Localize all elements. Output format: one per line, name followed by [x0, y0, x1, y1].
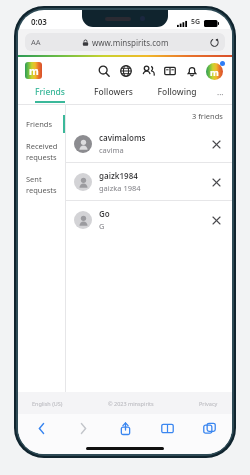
button[interactable]: Notifications — [184, 63, 199, 78]
staticText: Go — [99, 208, 110, 219]
button[interactable]: Friends — [140, 63, 155, 78]
button[interactable]: Go — [74, 201, 224, 238]
button[interactable]: Followers — [82, 84, 145, 104]
staticText: m — [210, 66, 219, 78]
button[interactable]: AA — [25, 33, 225, 51]
staticText: © 2023 minspirits — [108, 400, 154, 407]
staticText: gaizka 1984 — [99, 183, 141, 193]
button[interactable]: Library — [162, 63, 177, 78]
staticText: Privacy — [199, 400, 218, 407]
staticText: Following — [157, 86, 197, 98]
staticText: Friends — [35, 86, 65, 98]
button[interactable]: Forward — [72, 417, 94, 439]
staticText: gaizk1984 — [99, 170, 138, 181]
button[interactable]: Explore — [118, 63, 133, 78]
staticText: English (US) — [32, 400, 63, 407]
staticText: 3 friends — [192, 111, 223, 121]
button[interactable]: Bookmarks — [156, 417, 178, 439]
button[interactable]: Home — [25, 62, 42, 79]
button[interactable]: Friends — [18, 113, 65, 135]
staticText: 5G — [191, 17, 201, 27]
staticText: m — [29, 64, 39, 78]
staticText: Followers — [94, 86, 133, 98]
button[interactable]: Following — [145, 84, 208, 104]
button[interactable]: Reload — [210, 38, 219, 47]
staticText: G — [99, 221, 105, 231]
button[interactable]: Remove gaizk1984 — [208, 174, 224, 190]
button[interactable]: Received requests — [18, 135, 65, 168]
staticText: Sent requests — [26, 174, 57, 195]
button[interactable]: More — [208, 84, 232, 104]
button[interactable]: cavimaloms — [74, 125, 224, 162]
staticText: cavimaloms — [99, 132, 146, 143]
button[interactable]: Remove Go — [208, 212, 224, 228]
staticText: AA — [31, 37, 41, 47]
staticText: 0:03 — [31, 16, 47, 27]
staticText: ··· — [217, 89, 224, 100]
button[interactable]: Back — [30, 417, 52, 439]
staticText: www.minspirits.com — [92, 37, 169, 48]
button[interactable]: gaizk1984 — [74, 163, 224, 200]
button[interactable]: Share — [114, 417, 136, 439]
staticText: cavima — [99, 145, 124, 155]
button[interactable]: Search — [96, 63, 111, 78]
staticText: Received requests — [26, 141, 58, 162]
staticText: Friends — [26, 119, 52, 129]
button[interactable]: Sent requests — [18, 168, 65, 201]
button[interactable]: Remove cavimaloms — [208, 136, 224, 152]
button[interactable]: Friends — [18, 84, 82, 104]
button[interactable]: Profile — [206, 63, 223, 80]
button[interactable]: Tabs — [198, 417, 220, 439]
